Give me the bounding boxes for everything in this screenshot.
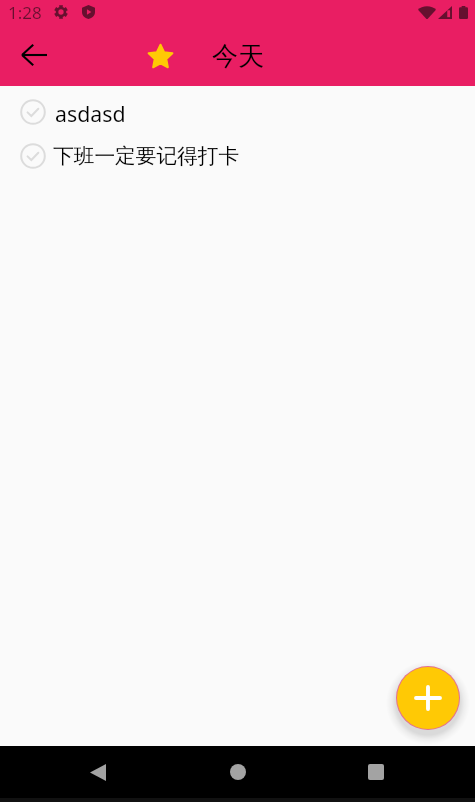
staticText: 1:28 bbox=[8, 1, 42, 24]
button[interactable]: Recent apps bbox=[352, 748, 400, 796]
button[interactable]: Home bbox=[214, 748, 262, 796]
button[interactable]: Back bbox=[10, 31, 58, 79]
button[interactable]: Starred bbox=[140, 35, 181, 76]
button[interactable]: Add task bbox=[397, 667, 459, 729]
button[interactable]: 下班一定要记得打卡 bbox=[0, 143, 475, 169]
button[interactable]: asdasd bbox=[0, 99, 475, 125]
staticText: 今天 bbox=[212, 40, 264, 73]
button[interactable]: Back bbox=[74, 748, 122, 796]
staticText: 下班一定要记得打卡 bbox=[53, 143, 240, 169]
staticText: asdasd bbox=[55, 99, 126, 125]
